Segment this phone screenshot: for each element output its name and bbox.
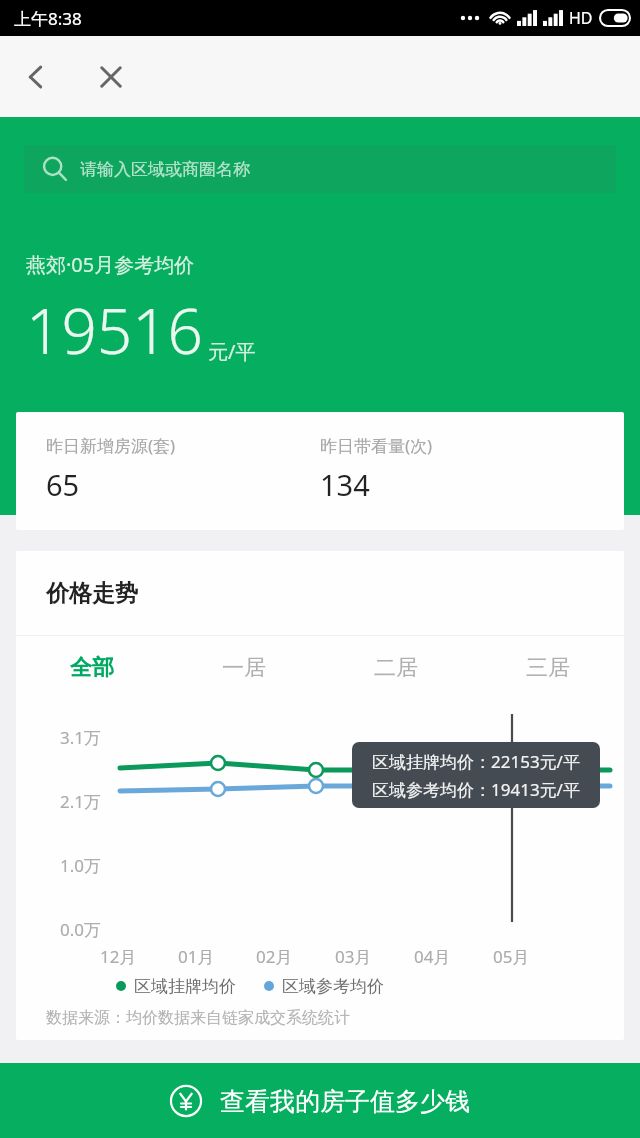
staticText: 区域参考均价 xyxy=(282,976,384,997)
staticText: 元/平 xyxy=(208,338,256,365)
staticText: 1.0万 xyxy=(60,854,102,877)
staticText: 一居 xyxy=(222,654,266,682)
staticText: 上午8:38 xyxy=(14,7,82,30)
staticText: 区域参考均价：19413元/平 xyxy=(372,778,580,801)
staticText: 02月 xyxy=(256,945,293,968)
staticText: 04月 xyxy=(414,945,451,968)
staticText: 01月 xyxy=(178,945,215,968)
staticText: 05月 xyxy=(493,945,530,968)
staticText: HD xyxy=(569,7,593,29)
staticText: 3.1万 xyxy=(60,726,102,749)
staticText: 2.1万 xyxy=(60,790,102,813)
staticText: 区域挂牌均价：22153元/平 xyxy=(372,750,580,773)
staticText: 请输入区域或商圈名称 xyxy=(80,159,250,180)
staticText: 12月 xyxy=(100,945,137,968)
button[interactable]: 查看我的房子值多少钱 xyxy=(0,1063,640,1138)
staticText: 价格走势 xyxy=(46,579,138,608)
staticText: 查看我的房子值多少钱 xyxy=(220,1086,470,1117)
staticText: 134 xyxy=(320,465,370,504)
staticText: 03月 xyxy=(335,945,372,968)
staticText: 三居 xyxy=(526,654,570,682)
button[interactable]: Back xyxy=(8,49,64,105)
staticText: 19516 xyxy=(26,288,204,372)
staticText: 区域挂牌均价 xyxy=(134,976,236,997)
button[interactable]: 二居 xyxy=(320,636,472,700)
staticText: 全部 xyxy=(70,654,114,682)
staticText: 燕郊·05月参考均价 xyxy=(26,251,195,278)
staticText: 二居 xyxy=(374,654,418,682)
staticText: 昨日新增房源(套) xyxy=(46,434,176,457)
button[interactable]: 一居 xyxy=(168,636,320,700)
button[interactable]: 全部 xyxy=(16,636,168,700)
button[interactable]: 请输入区域或商圈名称 xyxy=(24,145,616,193)
button[interactable]: 三居 xyxy=(472,636,624,700)
staticText: 数据来源：均价数据来自链家成交系统统计 xyxy=(46,1008,350,1028)
staticText: 昨日带看量(次) xyxy=(320,434,433,457)
staticText: 0.0万 xyxy=(60,918,102,941)
staticText: 65 xyxy=(46,465,80,504)
button[interactable]: Close xyxy=(83,49,139,105)
